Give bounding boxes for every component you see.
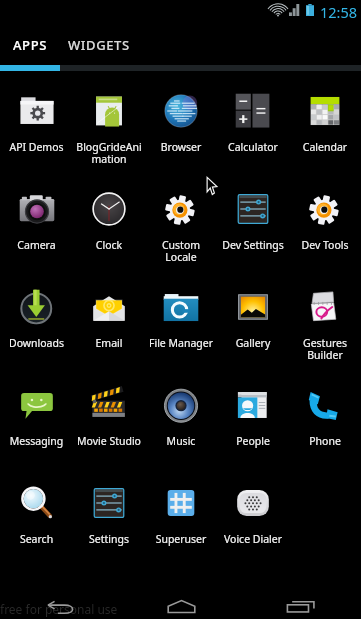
- button[interactable]: Email: [73, 267, 145, 365]
- button[interactable]: People: [217, 365, 289, 463]
- button[interactable]: Downloads: [0, 267, 73, 365]
- staticText: Search: [1, 532, 72, 546]
- staticText: Browser: [146, 140, 216, 154]
- staticText: WIDGETS: [68, 36, 130, 54]
- staticText: Gestures Builder: [290, 336, 360, 362]
- staticText: 12:58: [320, 2, 358, 22]
- staticText: Superuser: [146, 532, 216, 546]
- staticText: Settings: [74, 532, 144, 546]
- staticText: Custom Locale: [146, 238, 216, 264]
- button[interactable]: API Demos: [0, 71, 73, 169]
- button[interactable]: Superuser: [145, 463, 217, 561]
- staticText: Camera: [1, 238, 72, 252]
- staticText: Email: [74, 336, 144, 350]
- staticText: Clock: [74, 238, 144, 252]
- button[interactable]: Back: [0, 571, 121, 619]
- button[interactable]: Movie Studio: [73, 365, 145, 463]
- button[interactable]: APPS: [0, 24, 60, 65]
- staticText: Movie Studio: [74, 434, 144, 448]
- button[interactable]: Search: [0, 463, 73, 561]
- button[interactable]: Home: [121, 571, 241, 619]
- staticText: People: [218, 434, 288, 448]
- button[interactable]: Gallery: [217, 267, 289, 365]
- staticText: Voice Dialer: [218, 532, 288, 546]
- button[interactable]: Settings: [73, 463, 145, 561]
- button[interactable]: Calendar: [289, 71, 361, 169]
- button[interactable]: Calculator: [217, 71, 289, 169]
- staticText: Phone: [290, 434, 360, 448]
- button[interactable]: Voice Dialer: [217, 463, 289, 561]
- button[interactable]: Recents: [241, 571, 361, 619]
- button[interactable]: Dev Tools: [289, 169, 361, 267]
- button[interactable]: BlogGrideAnimation: [73, 71, 145, 169]
- button[interactable]: Browser: [145, 71, 217, 169]
- staticText: Downloads: [1, 336, 72, 350]
- staticText: Calendar: [290, 140, 360, 154]
- staticText: Gallery: [218, 336, 288, 350]
- staticText: BlogGrideAnimation: [74, 140, 144, 166]
- staticText: Dev Settings: [218, 238, 288, 252]
- button[interactable]: Camera: [0, 169, 73, 267]
- button[interactable]: Phone: [289, 365, 361, 463]
- staticText: Dev Tools: [290, 238, 360, 252]
- button[interactable]: File Manager: [145, 267, 217, 365]
- button[interactable]: Custom Locale: [145, 169, 217, 267]
- button[interactable]: Messaging: [0, 365, 73, 463]
- button[interactable]: Music: [145, 365, 217, 463]
- staticText: Calculator: [218, 140, 288, 154]
- button[interactable]: Clock: [73, 169, 145, 267]
- staticText: API Demos: [1, 140, 72, 154]
- staticText: Music: [146, 434, 216, 448]
- staticText: free for personal use: [0, 601, 118, 617]
- staticText: Messaging: [1, 434, 72, 448]
- staticText: File Manager: [146, 336, 216, 350]
- button[interactable]: Dev Settings: [217, 169, 289, 267]
- button[interactable]: WIDGETS: [60, 24, 138, 65]
- button[interactable]: Gestures Builder: [289, 267, 361, 365]
- staticText: APPS: [13, 36, 47, 54]
